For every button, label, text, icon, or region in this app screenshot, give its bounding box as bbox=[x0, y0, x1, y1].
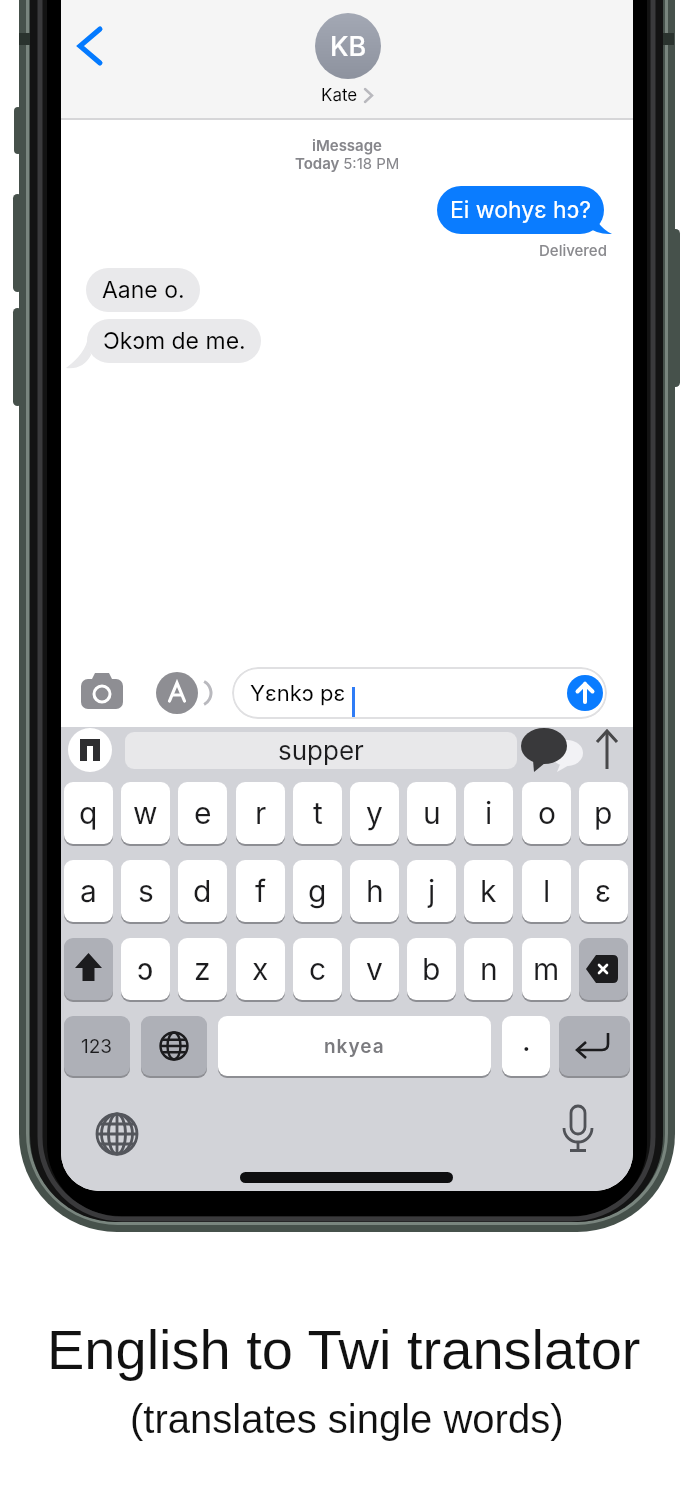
staticText: p bbox=[594, 795, 613, 831]
button[interactable]: j bbox=[407, 860, 456, 922]
button[interactable]: b bbox=[407, 938, 456, 1000]
staticText: c bbox=[309, 951, 327, 987]
staticText: Ɔkɔm de me. bbox=[103, 327, 246, 355]
button[interactable]: a bbox=[64, 860, 113, 922]
button[interactable]: u bbox=[407, 782, 456, 844]
button[interactable]: r bbox=[236, 782, 285, 844]
button[interactable]: m bbox=[522, 938, 571, 1000]
staticText: v bbox=[366, 951, 383, 987]
button[interactable]: d bbox=[178, 860, 227, 922]
staticText: y bbox=[366, 795, 383, 831]
button[interactable] bbox=[141, 1016, 207, 1076]
button[interactable]: o bbox=[522, 782, 571, 844]
staticText: Ei wohyɛ hɔ? bbox=[450, 196, 591, 224]
staticText: n bbox=[480, 951, 498, 987]
staticText: i bbox=[485, 795, 493, 831]
staticText: Delivered bbox=[539, 241, 607, 259]
staticText: nkyea bbox=[324, 1035, 385, 1058]
button[interactable]: n bbox=[464, 938, 513, 1000]
staticText: Today 5:18 PM bbox=[295, 154, 400, 172]
staticText: s bbox=[138, 873, 154, 909]
button[interactable]: i bbox=[464, 782, 513, 844]
staticText: Aane o. bbox=[102, 276, 185, 304]
staticText: 123 bbox=[81, 1035, 113, 1058]
button[interactable]: q bbox=[64, 782, 113, 844]
button[interactable]: f bbox=[236, 860, 285, 922]
staticText: f bbox=[255, 873, 267, 909]
staticText: a bbox=[80, 873, 97, 909]
staticText: z bbox=[194, 951, 211, 987]
button[interactable]: l bbox=[522, 860, 571, 922]
staticText: ɛ bbox=[595, 873, 612, 909]
staticText: k bbox=[480, 873, 497, 909]
button[interactable] bbox=[579, 938, 628, 1000]
staticText: h bbox=[366, 873, 384, 909]
button[interactable] bbox=[71, 24, 107, 68]
button[interactable]: x bbox=[236, 938, 285, 1000]
staticText: Yɛnkɔ pɛ bbox=[250, 680, 346, 707]
staticText: (translates single words) bbox=[130, 1397, 564, 1442]
staticText: w bbox=[133, 795, 158, 831]
staticText: r bbox=[255, 795, 267, 831]
button[interactable]: z bbox=[178, 938, 227, 1000]
staticText: m bbox=[533, 951, 560, 987]
staticText: q bbox=[79, 795, 98, 831]
button[interactable] bbox=[559, 1016, 630, 1076]
staticText: t bbox=[313, 795, 323, 831]
button[interactable]: v bbox=[350, 938, 399, 1000]
button[interactable] bbox=[68, 728, 112, 772]
staticText: j bbox=[428, 873, 436, 909]
button[interactable] bbox=[567, 675, 603, 711]
staticText: supper bbox=[278, 735, 364, 766]
staticText: iMessage bbox=[312, 136, 382, 154]
button[interactable]: KB bbox=[315, 13, 381, 79]
button[interactable]: k bbox=[464, 860, 513, 922]
button[interactable]: g bbox=[293, 860, 342, 922]
staticText: o bbox=[538, 795, 556, 831]
button[interactable]: nkyea bbox=[218, 1016, 491, 1076]
button[interactable]: h bbox=[350, 860, 399, 922]
button[interactable]: . bbox=[502, 1016, 550, 1076]
staticText: b bbox=[422, 951, 441, 987]
button[interactable]: c bbox=[293, 938, 342, 1000]
button[interactable]: ɛ bbox=[579, 860, 628, 922]
button[interactable] bbox=[591, 727, 623, 773]
button[interactable]: supper bbox=[125, 732, 517, 769]
button[interactable]: s bbox=[121, 860, 170, 922]
button[interactable] bbox=[81, 670, 129, 714]
button[interactable]: p bbox=[579, 782, 628, 844]
staticText: English to Twi translator bbox=[47, 1318, 641, 1381]
button[interactable]: e bbox=[178, 782, 227, 844]
staticText: l bbox=[543, 873, 551, 909]
staticText: ɔ bbox=[137, 951, 154, 987]
staticText: u bbox=[423, 795, 441, 831]
staticText: x bbox=[252, 951, 269, 987]
button[interactable]: ɔ bbox=[121, 938, 170, 1000]
staticText: Kate bbox=[321, 85, 358, 106]
button[interactable]: t bbox=[293, 782, 342, 844]
staticText: . bbox=[522, 1022, 531, 1058]
button[interactable] bbox=[553, 1100, 603, 1160]
button[interactable] bbox=[91, 1106, 147, 1162]
button[interactable]: w bbox=[121, 782, 170, 844]
button[interactable]: Kate bbox=[287, 82, 407, 108]
button[interactable]: y bbox=[350, 782, 399, 844]
button[interactable]: 123 bbox=[64, 1016, 130, 1076]
button[interactable] bbox=[156, 672, 214, 714]
button[interactable] bbox=[521, 726, 585, 774]
staticText: e bbox=[194, 795, 212, 831]
staticText: KB bbox=[330, 30, 367, 63]
staticText: d bbox=[193, 873, 212, 909]
button[interactable] bbox=[64, 938, 113, 1000]
staticText: g bbox=[308, 873, 327, 909]
